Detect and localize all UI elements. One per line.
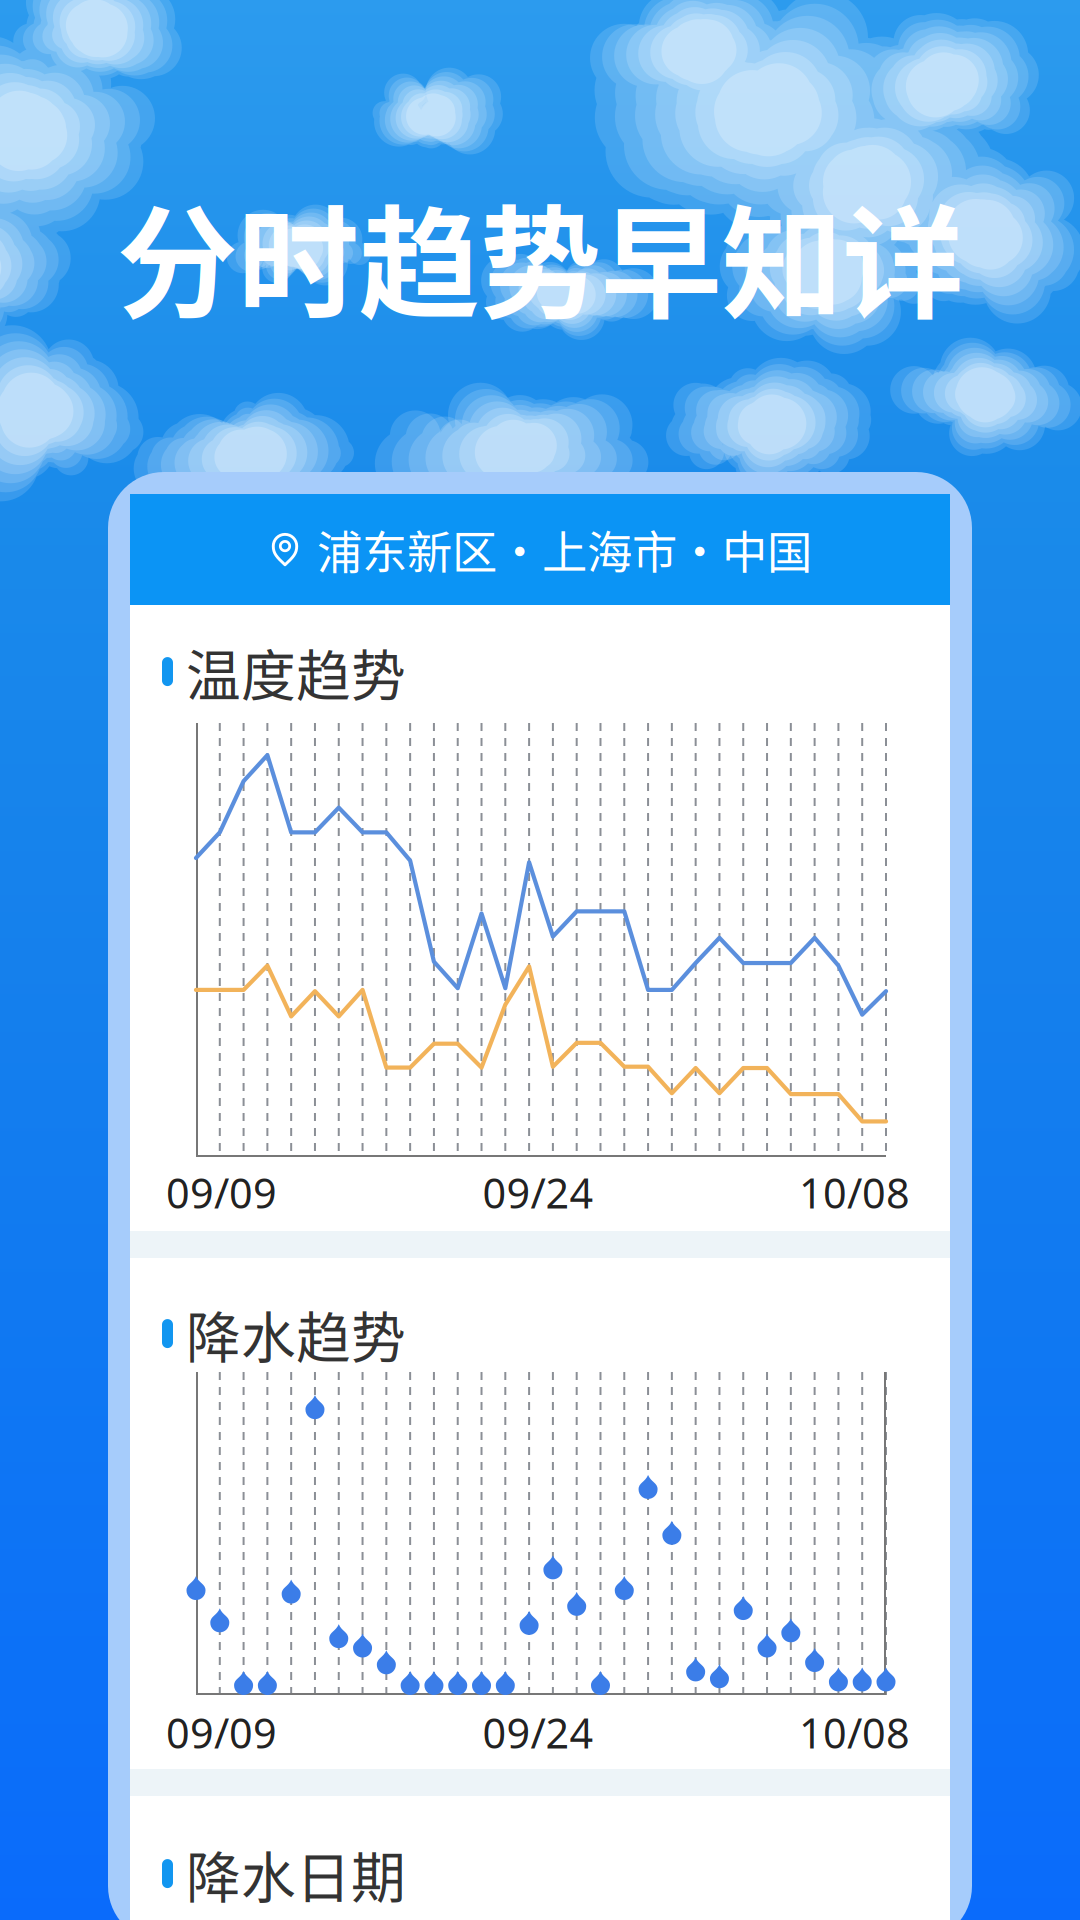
- staticText: 10/08: [799, 1705, 910, 1760]
- staticText: 09/09: [166, 1705, 277, 1760]
- staticText: 10/08: [799, 1165, 910, 1220]
- staticText: 09/24: [482, 1165, 593, 1220]
- staticText: 降水趋势: [186, 1294, 406, 1373]
- staticText: 浦东新区·上海市·中国: [317, 517, 812, 582]
- staticText: 09/24: [482, 1705, 593, 1760]
- staticText: 温度趋势: [186, 632, 406, 711]
- staticText: 降水日期: [186, 1834, 406, 1913]
- staticText: 分时趋势早知详: [116, 167, 963, 343]
- button[interactable]: 浦东新区·上海市·中国: [130, 494, 950, 605]
- staticText: 09/09: [166, 1165, 277, 1220]
